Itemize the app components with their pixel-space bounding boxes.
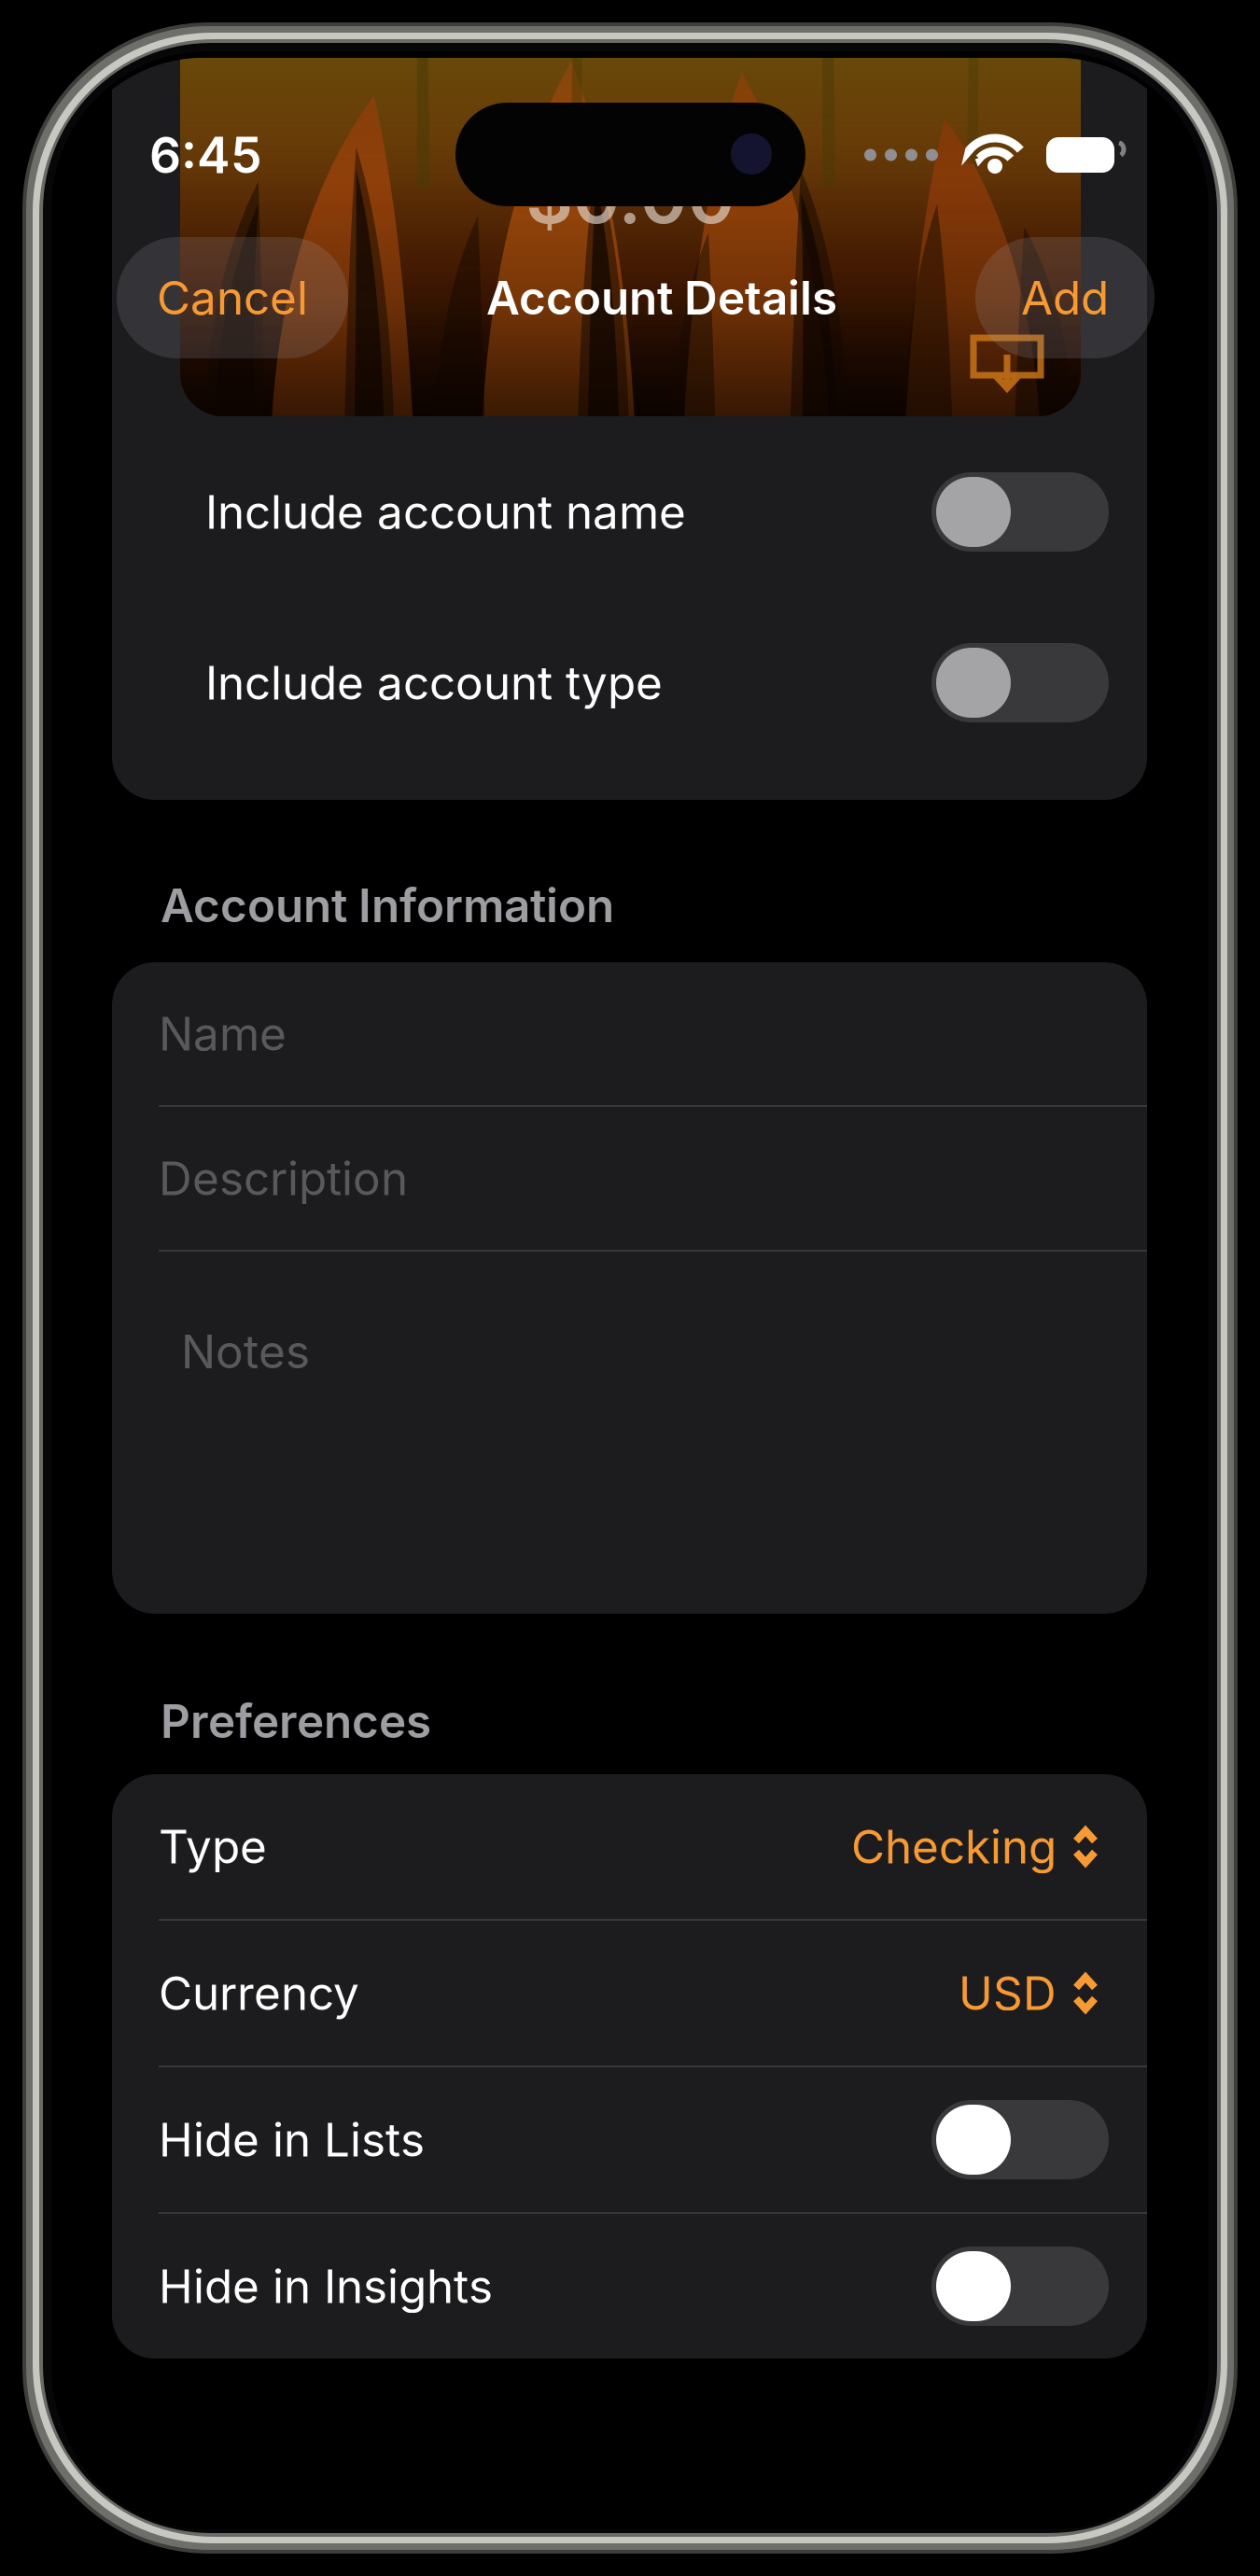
- staticText: 6:45: [149, 125, 262, 185]
- staticText: $0.00: [526, 153, 735, 240]
- staticText: Add: [1021, 270, 1109, 326]
- staticText: Account Details: [486, 270, 837, 326]
- staticText: Hide in Insights: [159, 2258, 493, 2314]
- staticText: Include account name: [205, 484, 686, 540]
- staticText: USD: [959, 1965, 1057, 2021]
- staticText: Account Information: [161, 878, 614, 933]
- button[interactable]: Type: [112, 1774, 1147, 1919]
- staticText: Cancel: [157, 270, 308, 326]
- staticText: Description: [159, 1151, 408, 1206]
- staticText: Preferences: [161, 1693, 431, 1749]
- button[interactable]: Cancel: [117, 237, 348, 358]
- staticText: Currency: [159, 1965, 359, 2021]
- button[interactable]: Currency: [112, 1921, 1147, 2065]
- button[interactable]: Hide in Lists: [112, 2067, 1147, 2212]
- button[interactable]: Hide in Insights: [112, 2214, 1147, 2359]
- button[interactable]: Include account type: [112, 597, 1147, 768]
- staticText: Hide in Lists: [159, 2112, 425, 2168]
- staticText: Type: [159, 1819, 267, 1875]
- staticText: Include account type: [205, 655, 663, 711]
- staticText: Checking: [851, 1819, 1057, 1875]
- button[interactable]: Include account name: [112, 427, 1147, 597]
- staticText: Name: [159, 1006, 287, 1062]
- button[interactable]: Add: [975, 237, 1155, 358]
- staticText: Notes: [181, 1324, 310, 1379]
